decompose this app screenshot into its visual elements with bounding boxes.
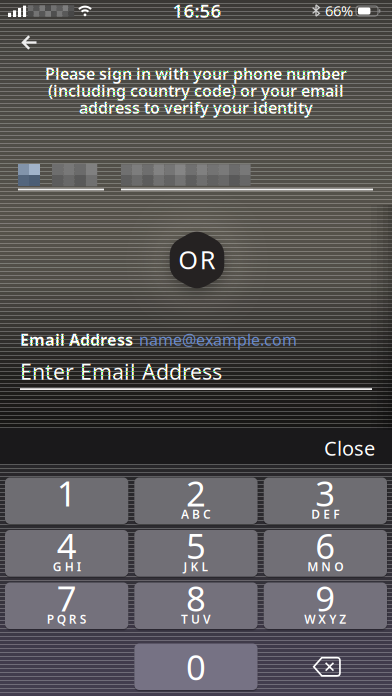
staticText: Please sign in with your phone number [45,63,347,84]
button[interactable]: 2 [134,477,258,524]
staticText: R [200,243,216,276]
staticText: N [321,558,331,574]
staticText: Q [57,611,66,627]
staticText: 16:56 [172,0,221,23]
button[interactable]: Close [305,429,375,466]
button[interactable]: 5 [134,530,258,576]
staticText: Enter Email Address [20,357,222,386]
button[interactable]: Enter Email Address [20,355,372,389]
button[interactable]: 0 [134,643,258,690]
staticText: T [181,611,188,627]
staticText: 7 [57,575,77,621]
staticText: M [307,558,318,574]
staticText: U [191,611,200,627]
staticText: X [318,611,326,627]
staticText: 4 [57,522,77,568]
staticText: E [323,506,330,522]
staticText: V [203,611,211,627]
button[interactable]: 7 [5,582,128,629]
staticText: 66% [325,1,353,20]
staticText: 1 [57,470,77,516]
button[interactable]: 4 [5,530,128,576]
button[interactable]: Back [8,26,52,58]
button[interactable]: Phone number [121,151,373,191]
staticText: 0 [186,644,206,690]
staticText: O [334,558,343,574]
staticText: Email Address [20,329,133,350]
staticText: I [77,558,81,574]
staticText: P [47,611,54,627]
staticText: (including country code) or your email [48,80,344,101]
staticText: J [183,558,187,574]
staticText: 2 [186,470,206,516]
staticText: Close [324,435,375,461]
button[interactable]: 1 [5,477,128,524]
staticText: R [69,611,77,627]
staticText: Y [329,611,336,627]
staticText: 5 [186,522,206,568]
staticText: 3 [315,470,335,516]
staticText: D [311,506,320,522]
staticText: O [178,243,198,276]
staticText: W [304,611,315,627]
staticText: G [53,558,62,574]
button[interactable]: 6 [264,530,387,576]
button[interactable]: Country code [18,151,104,191]
staticText: Z [339,611,346,627]
staticText: 9 [315,575,335,621]
staticText: A [181,506,189,522]
staticText: C [203,506,211,522]
staticText: B [192,506,200,522]
staticText: K [190,558,198,574]
staticText: L [201,558,208,574]
staticText: H [65,558,74,574]
staticText: S [80,611,87,627]
button[interactable]: Delete [265,643,388,690]
button[interactable]: 3 [264,477,387,524]
staticText: F [333,506,339,522]
button[interactable]: 9 [264,582,387,629]
staticText: 6 [315,522,335,568]
button[interactable]: 8 [134,582,258,629]
staticText: 8 [186,575,206,621]
staticText: name@example.com [139,329,297,350]
staticText: address to verify your identity [79,97,313,118]
